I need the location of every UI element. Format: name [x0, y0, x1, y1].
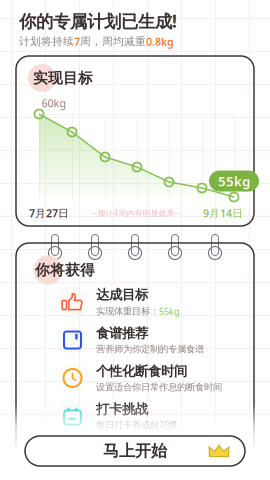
staticText: 7月27日 — [29, 206, 69, 220]
staticText: 设置适合你日常作息的断食时间 — [96, 381, 222, 393]
staticText: 达成目标 — [96, 287, 148, 303]
staticText: 60kg — [41, 96, 66, 110]
staticText: 周，周均减重 — [80, 35, 146, 48]
staticText: 你将获得 — [35, 261, 95, 279]
staticText: 0.8kg — [146, 34, 174, 49]
staticText: --预计4周内有明显效果-- — [91, 208, 180, 218]
staticText: 个性化断食时间 — [96, 363, 187, 379]
staticText: 马上开始 — [103, 441, 167, 461]
staticText: 你的专属计划已生成! — [19, 9, 177, 32]
staticText: 9月14日 — [203, 206, 243, 220]
staticText: 营养师为你定制的专属食谱 — [96, 343, 204, 355]
staticText: 55kg — [218, 172, 250, 190]
staticText: 7 — [74, 34, 80, 49]
button[interactable]: 马上开始 — [25, 436, 245, 466]
staticText: 计划将持续 — [19, 35, 74, 48]
staticText: 食谱推荐 — [96, 325, 148, 341]
staticText: 打卡挑战 — [96, 401, 148, 417]
staticText: 每日打卡养成好习惯 — [96, 419, 177, 431]
staticText: 实现体重目标： — [96, 305, 159, 317]
staticText: 实现目标 — [33, 69, 93, 87]
staticText: 55kg — [159, 305, 180, 317]
